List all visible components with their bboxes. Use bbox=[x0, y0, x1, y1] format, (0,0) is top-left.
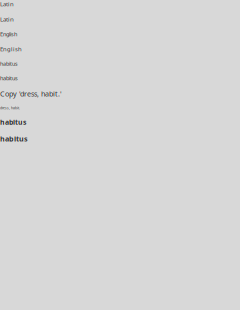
staticText: habitus bbox=[0, 74, 18, 82]
staticText: English bbox=[0, 45, 22, 53]
staticText: Latin bbox=[0, 0, 14, 8]
staticText: habitus bbox=[0, 134, 28, 144]
staticText: Latin bbox=[0, 15, 14, 23]
staticText: Copy 'dress, habit.' bbox=[0, 89, 62, 99]
staticText: dress, habit. bbox=[0, 106, 20, 110]
staticText: English bbox=[0, 30, 17, 38]
staticText: habitus bbox=[0, 60, 18, 67]
staticText: habitus bbox=[0, 117, 26, 127]
